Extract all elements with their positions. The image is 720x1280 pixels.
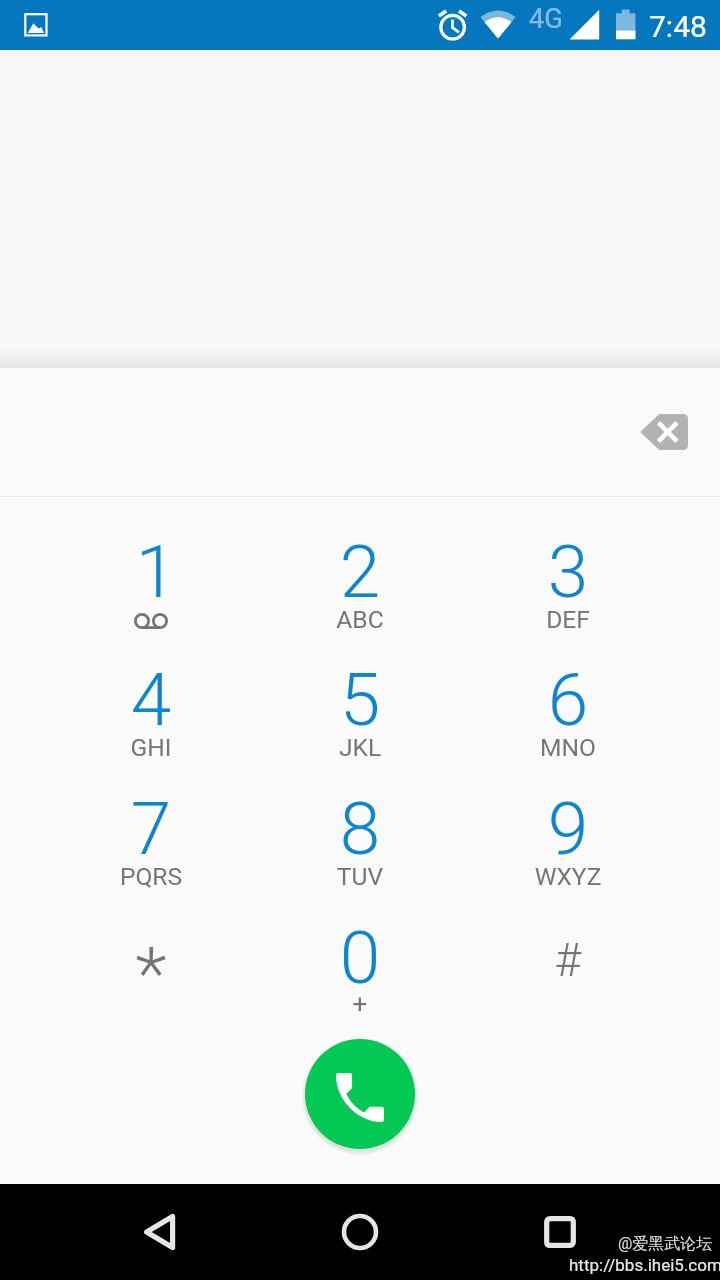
staticText: 9 <box>464 786 672 872</box>
staticText: 3 <box>464 529 672 615</box>
staticText: TUV <box>256 862 464 891</box>
button[interactable]: 6 <box>464 642 672 770</box>
staticText: 7 <box>47 786 255 872</box>
staticText: 0 <box>256 915 464 1001</box>
button[interactable]: Back <box>120 1200 200 1264</box>
button[interactable]: 5 <box>256 642 464 770</box>
staticText: WXYZ <box>464 862 672 891</box>
button[interactable]: 2 <box>256 514 464 642</box>
staticText: http://bbs.ihei5.com <box>569 1255 720 1275</box>
staticText: 7:48 <box>649 9 707 44</box>
button[interactable]: Home <box>320 1200 400 1264</box>
staticText: 1 <box>52 529 260 615</box>
staticText: DEF <box>464 605 672 634</box>
staticText: MNO <box>464 733 672 762</box>
button[interactable]: 4 <box>47 642 255 770</box>
staticText: # <box>464 933 672 987</box>
button[interactable]: Backspace <box>640 414 688 450</box>
button[interactable]: * <box>47 900 255 1028</box>
staticText: PQRS <box>47 862 255 891</box>
button[interactable]: Recent apps <box>520 1200 600 1264</box>
staticText: + <box>256 989 464 1019</box>
button[interactable]: # <box>464 900 672 1028</box>
staticText: 8 <box>256 786 464 872</box>
button[interactable]: 3 <box>464 514 672 642</box>
staticText: JKL <box>256 733 464 762</box>
button[interactable]: 9 <box>464 771 672 899</box>
staticText: 4 <box>47 657 255 743</box>
staticText: 4G <box>529 3 563 35</box>
button[interactable]: Call <box>305 1039 415 1149</box>
staticText: 5 <box>256 657 464 743</box>
staticText: ABC <box>256 605 464 634</box>
staticText: 2 <box>256 529 464 615</box>
staticText: GHI <box>47 733 255 762</box>
staticText: @爱黑武论坛 <box>618 1234 713 1254</box>
button[interactable]: 0 <box>256 900 464 1028</box>
button[interactable]: 7 <box>47 771 255 899</box>
button[interactable]: 8 <box>256 771 464 899</box>
button[interactable]: 1 <box>47 514 255 642</box>
staticText: * <box>47 931 255 1017</box>
staticText: 6 <box>464 657 672 743</box>
